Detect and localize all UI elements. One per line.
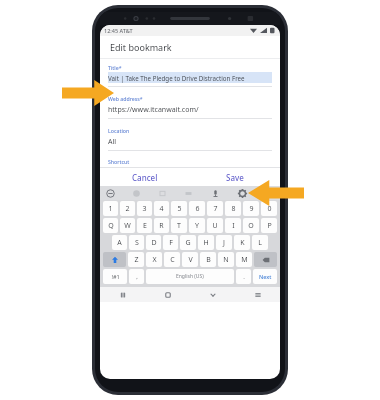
- staticText: Cancel: [132, 172, 158, 183]
- staticText: Shortcut: [108, 158, 130, 165]
- button[interactable]: H: [198, 235, 214, 250]
- staticText: 9: [249, 204, 254, 214]
- button[interactable]: P: [261, 218, 277, 233]
- button[interactable]: Z: [128, 252, 144, 267]
- button[interactable]: Home: [145, 287, 190, 302]
- button[interactable]: 0: [261, 201, 277, 216]
- button[interactable]: T: [171, 218, 187, 233]
- button[interactable]: 9: [243, 201, 259, 216]
- staticText: U: [212, 221, 218, 231]
- button[interactable]: Voice input: [210, 188, 221, 199]
- staticText: I: [232, 221, 235, 231]
- button[interactable]: https://www.itcanwait.com/: [108, 104, 272, 115]
- button[interactable]: G: [180, 235, 196, 250]
- staticText: X: [152, 255, 157, 265]
- staticText: Web address*: [108, 95, 143, 102]
- button[interactable]: Save: [190, 168, 280, 186]
- staticText: 1: [108, 204, 113, 214]
- button[interactable]: W: [120, 218, 135, 233]
- staticText: English (US): [176, 273, 204, 280]
- button[interactable]: X: [146, 252, 162, 267]
- button[interactable]: I: [225, 218, 241, 233]
- button[interactable]: Cancel: [100, 168, 190, 186]
- staticText: Q: [108, 221, 114, 231]
- staticText: D: [151, 238, 157, 248]
- button[interactable]: More options: [264, 188, 275, 199]
- button[interactable]: .: [236, 269, 251, 284]
- staticText: https://www.itcanwait.com/: [108, 105, 199, 115]
- staticText: F: [169, 238, 173, 248]
- button[interactable]: ,: [129, 269, 144, 284]
- button[interactable]: 4: [154, 201, 169, 216]
- button[interactable]: English (US): [146, 269, 234, 284]
- button[interactable]: N: [218, 252, 234, 267]
- button[interactable]: 7: [207, 201, 223, 216]
- staticText: 6: [195, 204, 200, 214]
- button[interactable]: L: [252, 235, 268, 250]
- staticText: 12:45 AT&T: [104, 27, 133, 34]
- staticText: A: [117, 238, 122, 248]
- staticText: All: [108, 137, 117, 147]
- staticText: .: [243, 273, 245, 281]
- button[interactable]: K: [234, 235, 250, 250]
- button[interactable]: Recents: [100, 287, 145, 302]
- staticText: !#1: [111, 273, 120, 280]
- staticText: S: [135, 238, 139, 248]
- button[interactable]: A: [112, 235, 127, 250]
- staticText: Y: [195, 221, 199, 231]
- button[interactable]: Y: [189, 218, 205, 233]
- button[interactable]: C: [164, 252, 180, 267]
- staticText: Title*: [108, 64, 122, 71]
- button[interactable]: O: [243, 218, 259, 233]
- button[interactable]: Backspace: [254, 252, 277, 267]
- button[interactable]: S: [129, 235, 144, 250]
- staticText: J: [223, 238, 225, 248]
- button[interactable]: Next: [253, 269, 277, 284]
- button[interactable]: 6: [189, 201, 205, 216]
- staticText: N: [223, 255, 229, 265]
- staticText: 4: [159, 204, 164, 214]
- button[interactable]: U: [207, 218, 223, 233]
- button[interactable]: !#1: [103, 269, 127, 284]
- staticText: ,: [136, 273, 138, 281]
- button[interactable]: Shift: [103, 252, 126, 267]
- button[interactable]: F: [163, 235, 178, 250]
- button[interactable]: 1: [103, 201, 118, 216]
- button[interactable]: J: [216, 235, 232, 250]
- staticText: Edit bookmark: [110, 41, 172, 53]
- button[interactable]: Menu: [235, 287, 280, 302]
- staticText: T: [177, 221, 181, 231]
- staticText: Save: [226, 172, 244, 183]
- staticText: 0: [267, 204, 272, 214]
- button[interactable]: 2: [120, 201, 135, 216]
- staticText: P: [267, 221, 272, 231]
- button[interactable]: V: [182, 252, 198, 267]
- button[interactable]: Vait | Take The Pledge to Drive Distract…: [108, 72, 272, 83]
- button[interactable]: 8: [225, 201, 241, 216]
- button[interactable]: Settings: [237, 188, 248, 199]
- staticText: 7: [213, 204, 218, 214]
- staticText: Next: [259, 273, 272, 280]
- button[interactable]: Translate: [183, 188, 194, 199]
- button[interactable]: E: [137, 218, 152, 233]
- button[interactable]: Clipboard: [105, 188, 116, 199]
- button[interactable]: Hide keyboard: [190, 287, 235, 302]
- button[interactable]: M: [236, 252, 252, 267]
- button[interactable]: Sticker: [131, 188, 142, 199]
- staticText: 2: [125, 204, 130, 214]
- staticText: G: [185, 238, 191, 248]
- staticText: C: [170, 255, 175, 265]
- button[interactable]: D: [146, 235, 161, 250]
- button[interactable]: B: [200, 252, 216, 267]
- button[interactable]: R: [154, 218, 169, 233]
- button[interactable]: All: [108, 136, 272, 147]
- button[interactable]: Q: [103, 218, 118, 233]
- staticText: E: [143, 221, 147, 231]
- button[interactable]: GIF: [157, 188, 168, 199]
- button[interactable]: 3: [137, 201, 152, 216]
- staticText: K: [240, 238, 245, 248]
- staticText: 5: [177, 204, 182, 214]
- button[interactable]: 5: [171, 201, 187, 216]
- staticText: Vait | Take The Pledge to Drive Distract…: [108, 74, 245, 82]
- staticText: H: [203, 238, 209, 248]
